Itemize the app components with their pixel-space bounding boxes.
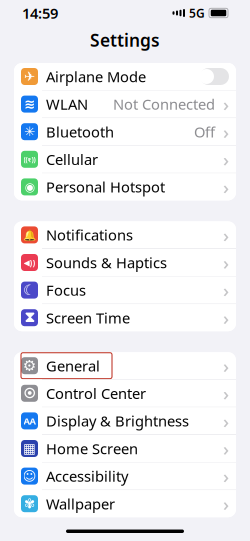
staticText: › xyxy=(223,278,229,302)
staticText: Wallpaper xyxy=(46,494,115,513)
button[interactable]: ✾ xyxy=(14,490,236,517)
staticText: › xyxy=(223,92,229,116)
staticText: Display & Brightness xyxy=(46,411,189,431)
staticText: Not Connected xyxy=(113,94,215,114)
button[interactable]: ⚙ xyxy=(14,352,236,379)
staticText: › xyxy=(223,119,229,144)
staticText: › xyxy=(223,408,229,433)
button[interactable]: ⧗ xyxy=(14,304,236,331)
staticText: ☾ xyxy=(23,282,36,298)
staticText: › xyxy=(223,222,229,247)
staticText: ☺ xyxy=(22,468,36,484)
staticText: WLAN xyxy=(46,94,88,114)
staticText: › xyxy=(223,353,229,378)
button[interactable]: ✳ xyxy=(14,118,236,145)
staticText: 🔔 xyxy=(23,229,36,241)
staticText: Cellular xyxy=(46,150,98,169)
staticText: 14:59 xyxy=(22,3,58,23)
staticText: Home Screen xyxy=(46,439,138,458)
staticText: ▦ xyxy=(23,441,36,456)
staticText: Bluetooth xyxy=(46,122,114,141)
button[interactable]: AA xyxy=(14,407,236,434)
staticText: › xyxy=(223,147,229,172)
staticText: Accessibility xyxy=(46,466,128,486)
staticText: Settings xyxy=(90,28,160,51)
staticText: Screen Time xyxy=(46,308,130,327)
staticText: ◀)) xyxy=(23,257,35,268)
staticText: Notifications xyxy=(46,225,133,245)
staticText: › xyxy=(223,381,229,406)
button[interactable]: ⦿ xyxy=(14,380,236,407)
staticText: ✳ xyxy=(24,124,35,139)
staticText: › xyxy=(223,491,229,516)
staticText: ⚙ xyxy=(23,357,36,374)
button[interactable]: ☾ xyxy=(14,277,236,304)
staticText: › xyxy=(223,250,229,275)
staticText: 5G xyxy=(189,5,205,21)
button[interactable]: ◀)) xyxy=(14,249,236,276)
staticText: › xyxy=(223,174,229,199)
staticText: ≋ xyxy=(24,96,35,112)
staticText: ⧗ xyxy=(24,310,34,325)
staticText: ⦿ xyxy=(23,387,35,399)
staticText: General xyxy=(46,356,100,375)
button[interactable]: ≋ xyxy=(14,91,236,118)
staticText: › xyxy=(223,305,229,330)
staticText: Sounds & Haptics xyxy=(46,253,167,272)
staticText: ✈ xyxy=(24,69,35,84)
staticText: ◉ xyxy=(24,180,34,194)
staticText: › xyxy=(223,436,229,461)
button[interactable]: ◉ xyxy=(14,173,236,200)
button[interactable]: ☺ xyxy=(14,463,236,490)
button[interactable]: ✈ xyxy=(14,63,236,90)
staticText: AA xyxy=(23,415,35,427)
staticText: Control Center xyxy=(46,384,146,403)
staticText: Off xyxy=(194,122,215,141)
staticText: Airplane Mode xyxy=(46,67,146,86)
staticText: › xyxy=(223,464,229,488)
staticText: Focus xyxy=(46,280,86,300)
staticText: ((१)) xyxy=(23,155,35,164)
button[interactable]: ▦ xyxy=(14,435,236,462)
staticText: Personal Hotspot xyxy=(46,177,165,197)
staticText: ✾ xyxy=(24,496,35,511)
button[interactable]: 🔔 xyxy=(14,221,236,248)
button[interactable]: ((१)) xyxy=(14,146,236,173)
